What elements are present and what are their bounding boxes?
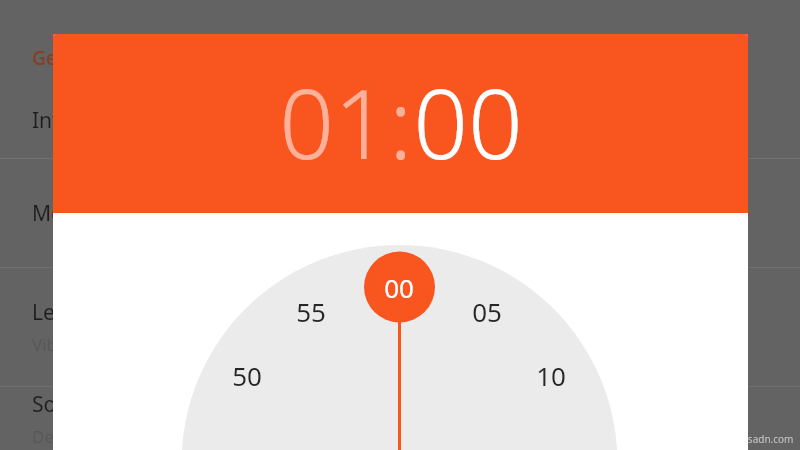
button[interactable]: Seconds picker dial — [53, 213, 748, 450]
button[interactable]: 00 — [413, 56, 523, 187]
button[interactable]: Mode — [0, 159, 800, 267]
button[interactable]: Interval — [0, 82, 800, 158]
button[interactable]: Length — [0, 268, 800, 386]
staticText: General — [32, 45, 104, 71]
staticText: Default — [32, 425, 91, 448]
staticText: 05 — [472, 294, 502, 329]
staticText: wsadn.com — [740, 432, 794, 446]
staticText: Sound — [32, 390, 96, 419]
staticText: Mode — [32, 199, 89, 228]
button[interactable]: Sound — [0, 387, 800, 450]
staticText: 55 — [296, 294, 326, 329]
staticText: : — [389, 56, 413, 187]
staticText: Vibrate — [32, 333, 89, 356]
staticText: Length — [32, 298, 102, 327]
staticText: Interval — [32, 106, 109, 135]
staticText: 50 — [232, 358, 262, 393]
staticText: 10 — [536, 358, 566, 393]
staticText: 00 — [384, 270, 414, 305]
button[interactable]: 01 — [279, 56, 389, 187]
